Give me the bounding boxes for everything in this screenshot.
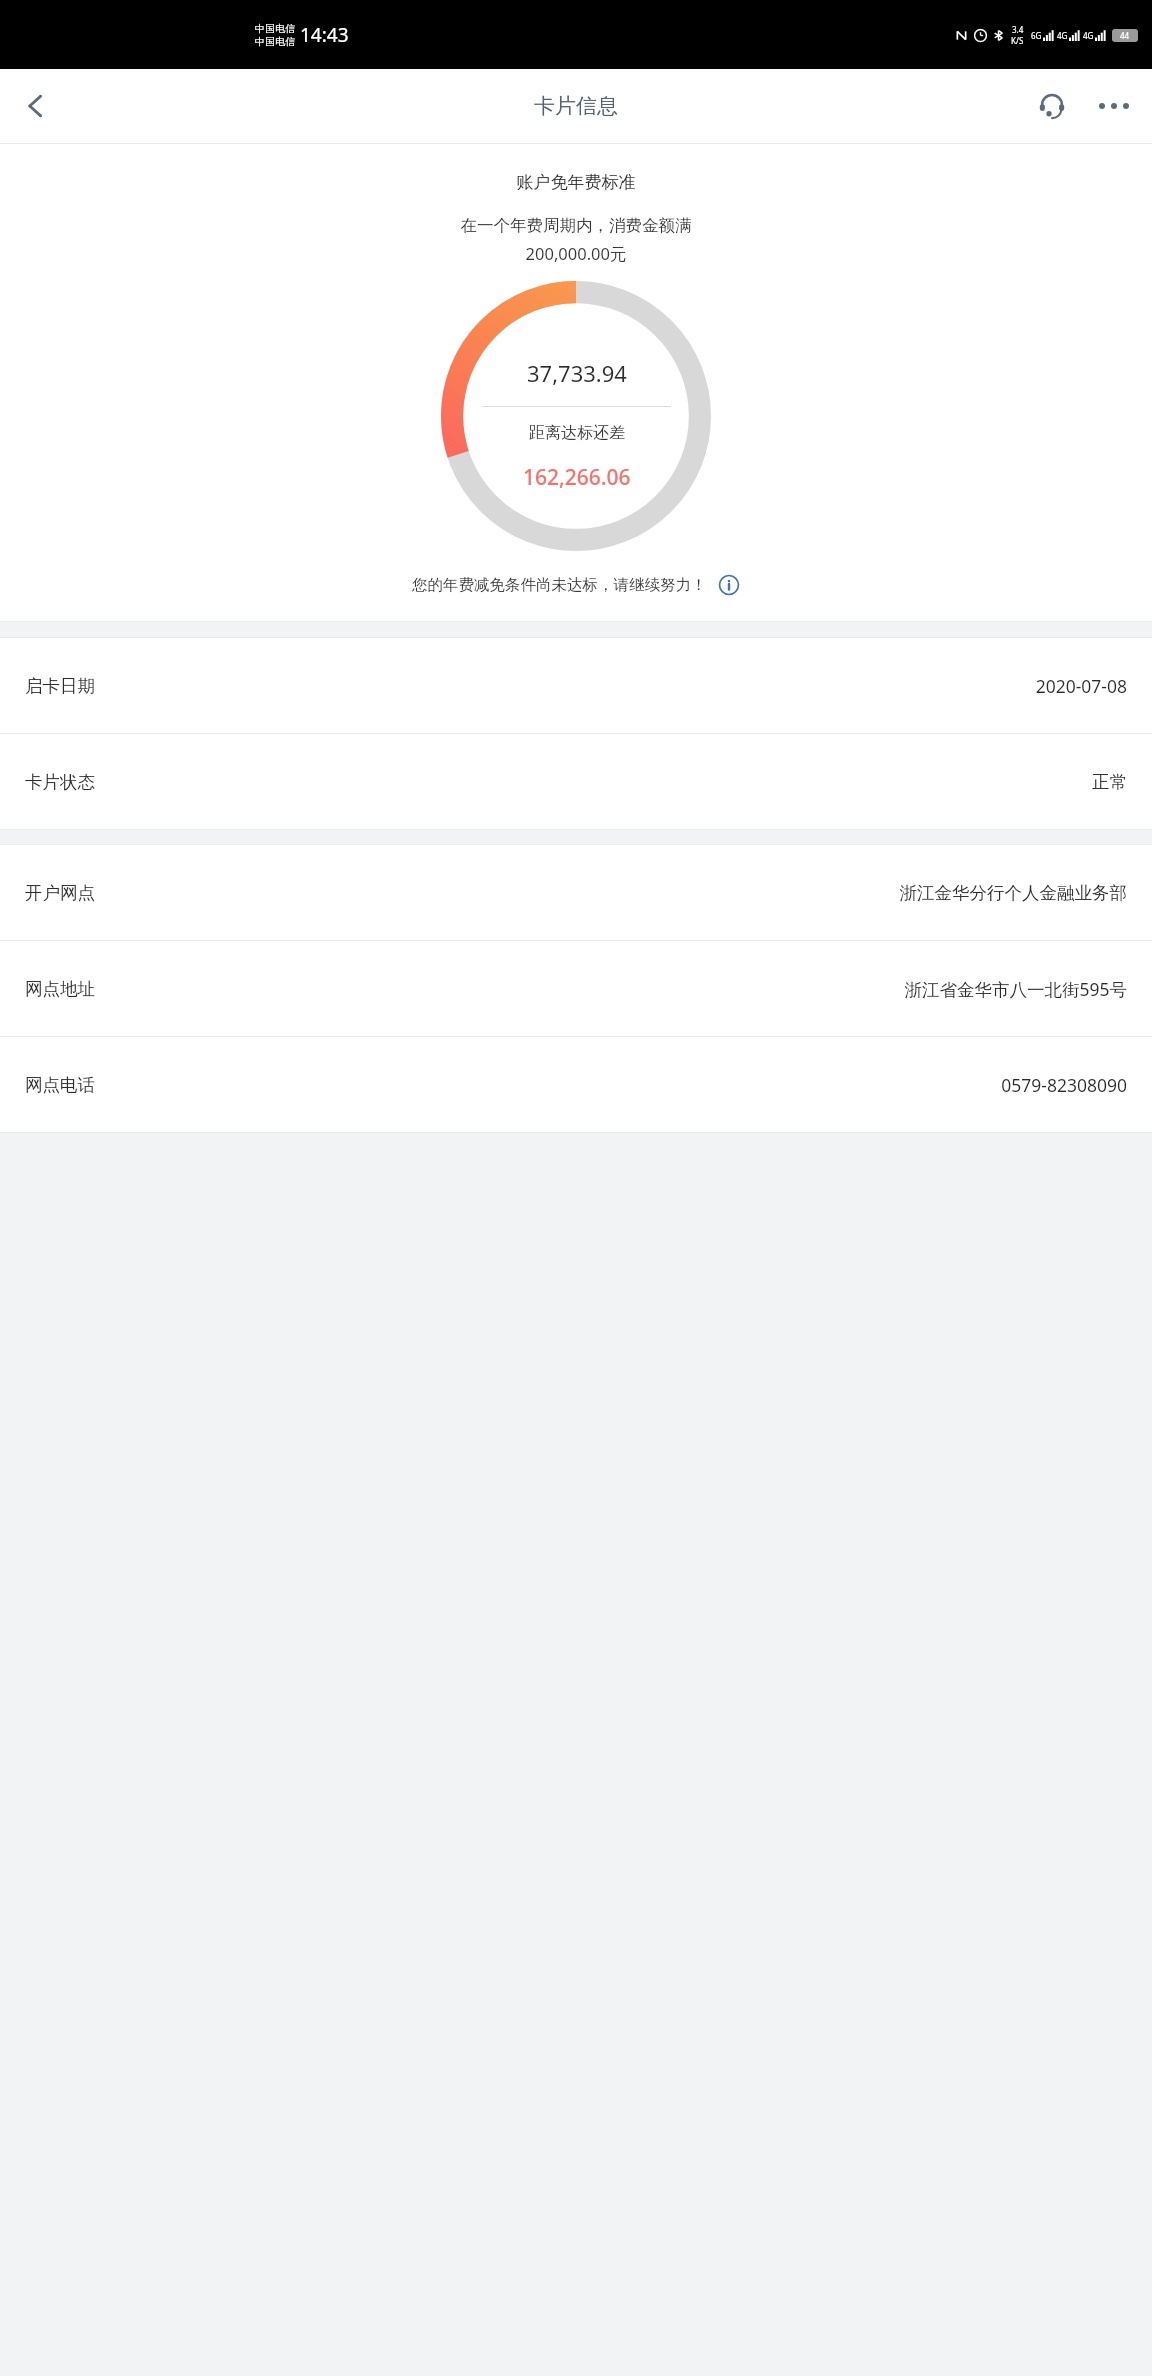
staticText: 中国电信 [255, 35, 295, 48]
button[interactable]: 开户网点 [0, 845, 1152, 940]
button[interactable]: 更多 [1088, 80, 1140, 132]
staticText: 中国电信 [255, 22, 295, 35]
staticText: 您的年费减免条件尚未达标，请继续努力！ [412, 575, 707, 595]
staticText: 162,266.06 [523, 463, 631, 492]
staticText: 44 [1120, 30, 1130, 41]
staticText: 14:43 [300, 22, 349, 48]
staticText: 4G [1083, 30, 1094, 41]
staticText: 正常 [1092, 771, 1127, 793]
staticText: 网点电话 [25, 1074, 95, 1096]
button[interactable]: 返回 [10, 80, 62, 132]
staticText: 账户免年费标准 [0, 172, 1152, 193]
staticText: 启卡日期 [25, 675, 95, 697]
button[interactable]: 客服 [1026, 80, 1078, 132]
staticText: K/S [1011, 35, 1024, 46]
staticText: 0579-82308090 [1001, 1073, 1127, 1097]
staticText: 200,000.00元 [0, 242, 1152, 265]
staticText: 卡片状态 [25, 771, 95, 793]
staticText: 4G [1057, 30, 1068, 41]
button[interactable]: 说明 [717, 573, 741, 597]
staticText: 卡片信息 [534, 93, 618, 119]
staticText: 网点地址 [25, 978, 95, 1000]
staticText: 在一个年费周期内，消费金额满 [0, 215, 1152, 236]
staticText: 6G [1031, 30, 1042, 41]
staticText: 37,733.94 [527, 358, 627, 388]
button[interactable]: 卡片状态 [0, 734, 1152, 829]
button[interactable]: 网点地址 [0, 941, 1152, 1036]
staticText: 2020-07-08 [1035, 674, 1127, 698]
staticText: 3.4 [1012, 24, 1024, 35]
staticText: 距离达标还差 [529, 423, 625, 443]
button[interactable]: 网点电话 [0, 1037, 1152, 1132]
staticText: 浙江金华分行个人金融业务部 [899, 882, 1127, 904]
staticText: 开户网点 [25, 882, 95, 904]
staticText: 浙江省金华市八一北街595号 [904, 977, 1127, 1001]
button[interactable]: 启卡日期 [0, 638, 1152, 733]
